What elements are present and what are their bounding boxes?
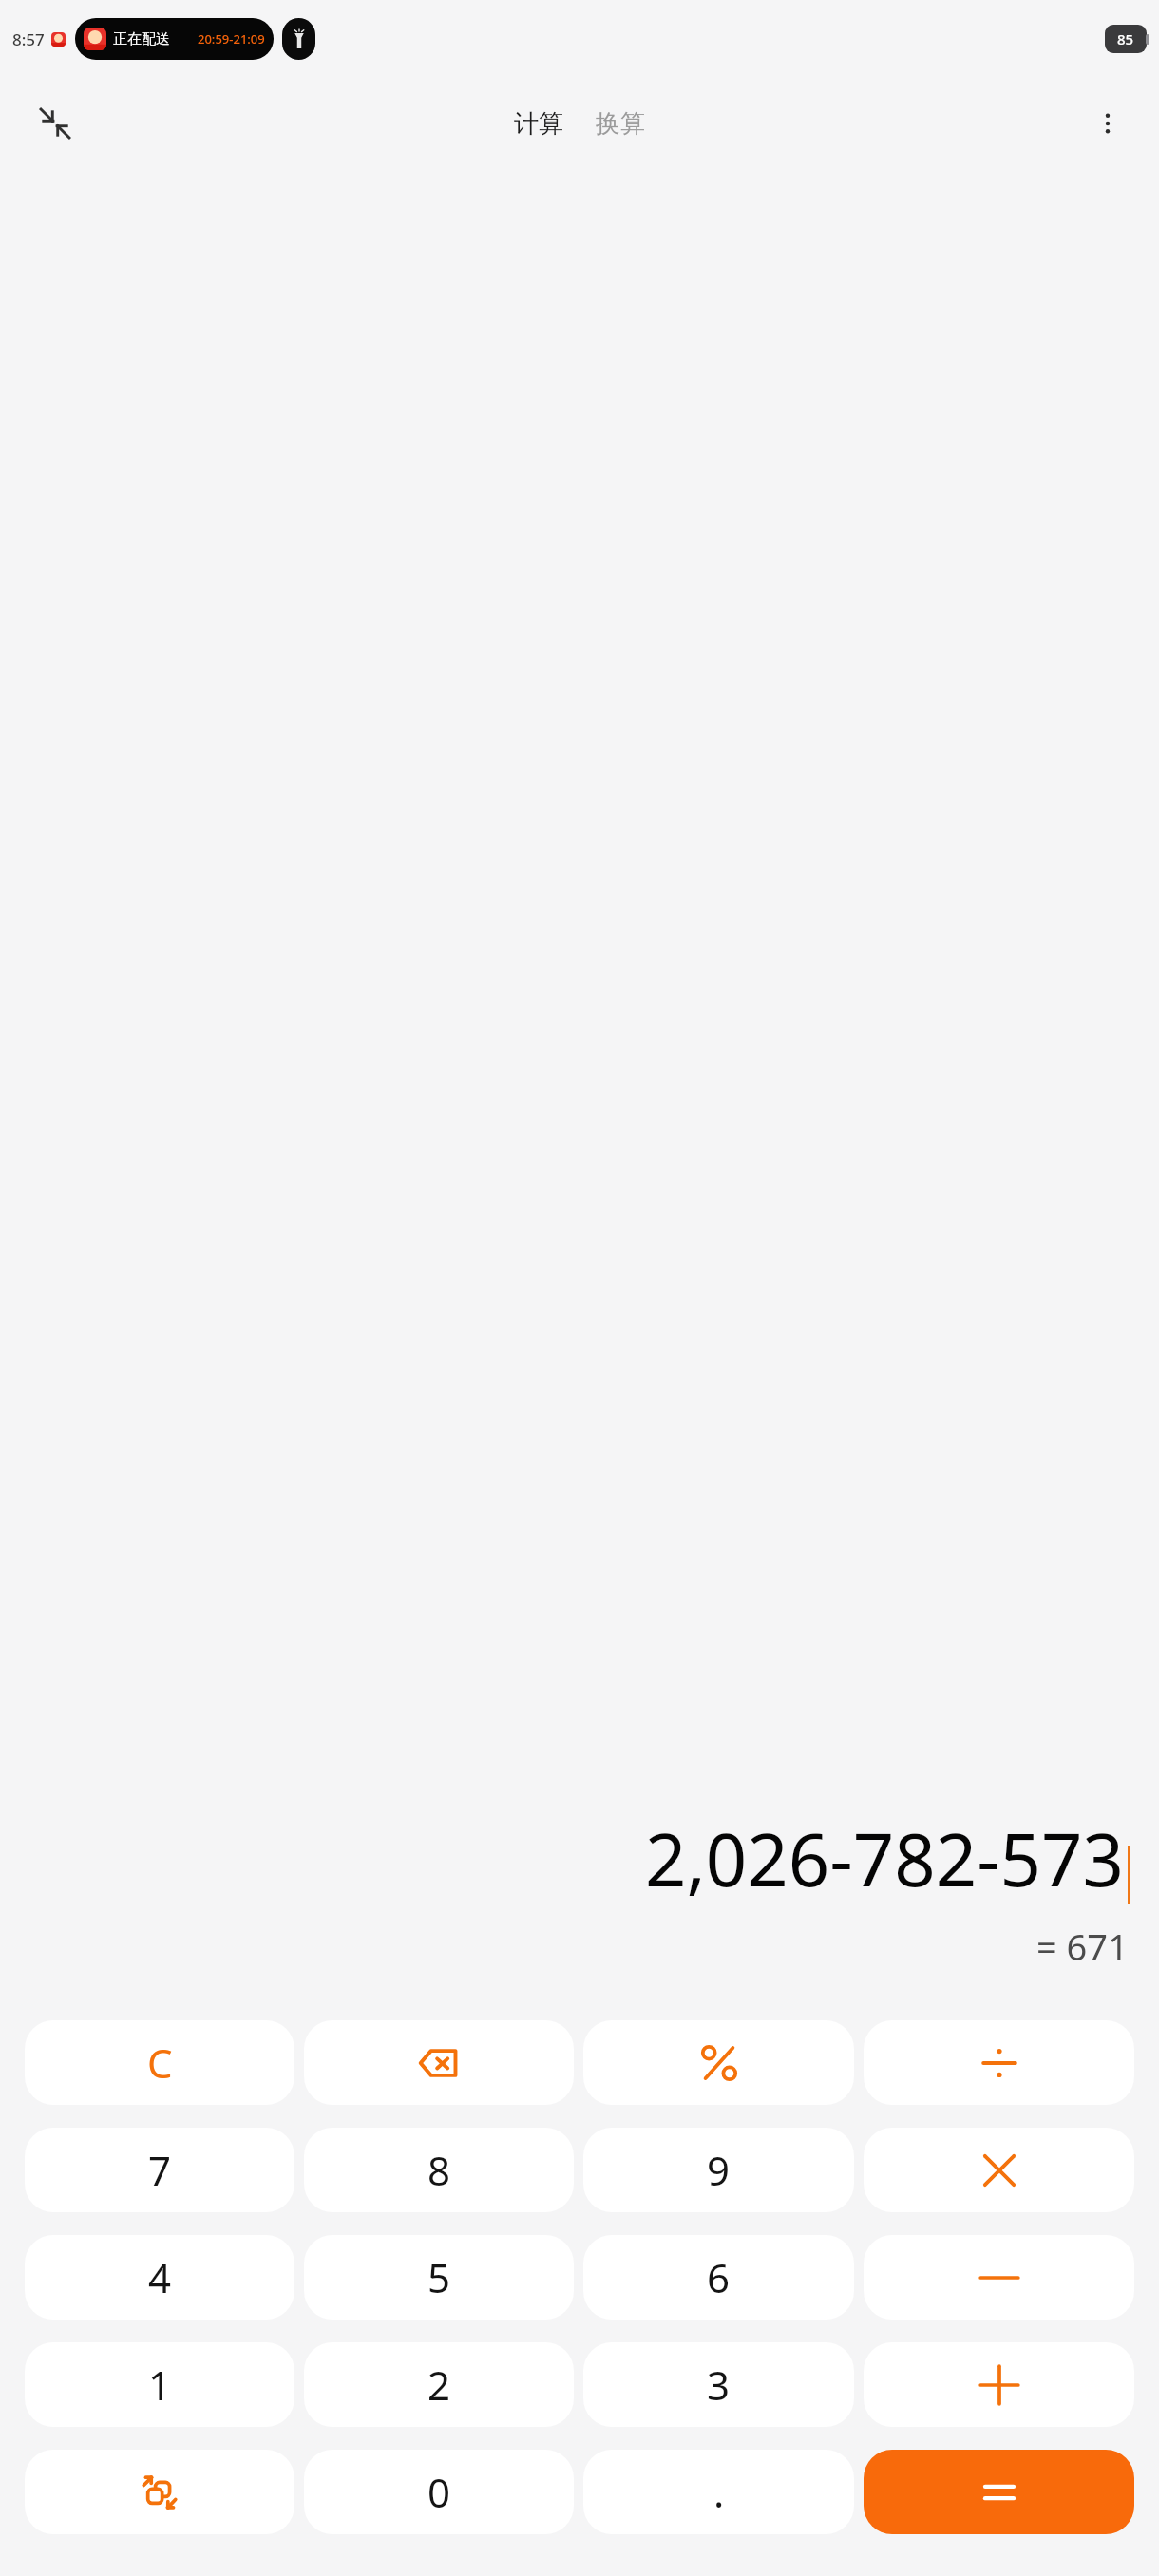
staticText: 3 xyxy=(707,2358,731,2412)
staticText: 8:57 xyxy=(12,28,45,50)
staticText: 20:59-21:09 xyxy=(198,30,265,47)
button[interactable]: 5 xyxy=(304,2235,574,2320)
staticText: 8 xyxy=(427,2143,451,2197)
button[interactable]: 2 xyxy=(304,2342,574,2427)
staticText: 0 xyxy=(427,2465,451,2519)
button[interactable]: Collapse xyxy=(28,97,82,150)
button[interactable]: Percent xyxy=(583,2020,854,2105)
button[interactable]: Backspace xyxy=(304,2020,574,2105)
staticText: 9 xyxy=(707,2143,731,2197)
button[interactable]: 9 xyxy=(583,2128,854,2212)
staticText: 计算 xyxy=(514,108,563,140)
staticText: 5 xyxy=(427,2250,451,2304)
staticText: 换算 xyxy=(596,108,645,140)
button[interactable]: 3 xyxy=(583,2342,854,2427)
button[interactable]: Convert xyxy=(25,2450,294,2534)
button[interactable]: 1 xyxy=(25,2342,294,2427)
button[interactable]: 0 xyxy=(304,2450,574,2534)
button[interactable]: Equals xyxy=(864,2450,1134,2534)
button[interactable]: . xyxy=(583,2450,854,2534)
button[interactable]: 换算 xyxy=(586,103,655,145)
staticText: 4 xyxy=(148,2250,172,2304)
staticText: 正在配送 xyxy=(113,30,170,48)
button[interactable]: 7 xyxy=(25,2128,294,2212)
button[interactable]: Add xyxy=(864,2342,1134,2427)
button[interactable]: 8 xyxy=(304,2128,574,2212)
staticText: 1 xyxy=(148,2358,172,2412)
staticText: 2,026-782-573 xyxy=(645,1809,1125,1908)
staticText: 85 xyxy=(1117,29,1134,48)
button[interactable]: Subtract xyxy=(864,2235,1134,2320)
staticText: = 671 xyxy=(1036,1922,1129,1971)
button[interactable]: C xyxy=(25,2020,294,2105)
staticText: C xyxy=(147,2036,173,2090)
button[interactable]: Multiply xyxy=(864,2128,1134,2212)
staticText: 7 xyxy=(148,2143,172,2197)
button[interactable]: 6 xyxy=(583,2235,854,2320)
button[interactable]: 计算 xyxy=(504,103,573,145)
button[interactable]: Divide xyxy=(864,2020,1134,2105)
staticText: . xyxy=(713,2465,725,2519)
button[interactable]: More options xyxy=(1081,97,1134,150)
staticText: 2 xyxy=(427,2358,451,2412)
button[interactable]: 4 xyxy=(25,2235,294,2320)
staticText: 6 xyxy=(707,2250,731,2304)
